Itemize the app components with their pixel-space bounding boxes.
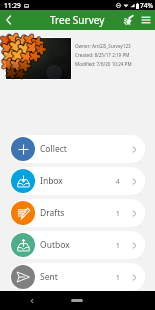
staticText: Sent — [40, 271, 58, 283]
staticText: Inbox — [40, 175, 63, 187]
button[interactable]: Drafts — [15, 199, 145, 227]
button[interactable]: Menu — [137, 11, 155, 29]
button[interactable]: Inbox — [15, 167, 145, 195]
button[interactable]: Sent — [15, 263, 145, 291]
button[interactable]: GPS — [119, 11, 137, 29]
staticText: 1 — [116, 209, 120, 218]
button[interactable]: Collect — [15, 135, 145, 163]
button[interactable]: Back — [24, 293, 40, 309]
staticText: 4 — [116, 177, 120, 186]
staticText: Created: 8/25/17 2:19 PM — [75, 52, 130, 58]
staticText: 74% — [140, 1, 153, 10]
staticText: Modified: 7/6/20 10:24 PM — [75, 61, 132, 67]
staticText: 1 — [116, 241, 120, 250]
button[interactable]: Outbox — [15, 231, 145, 259]
button[interactable]: Back — [0, 11, 18, 29]
staticText: Drafts — [40, 207, 65, 219]
staticText: Collect — [40, 143, 67, 155]
staticText: Outbox — [40, 239, 70, 251]
staticText: 11:29 — [4, 1, 21, 10]
staticText: Tree Survey — [50, 13, 105, 27]
staticText: Owner: ArcGIS_Survey123 — [75, 43, 131, 49]
button[interactable]: Home — [71, 299, 83, 302]
staticText: 1 — [116, 273, 120, 282]
